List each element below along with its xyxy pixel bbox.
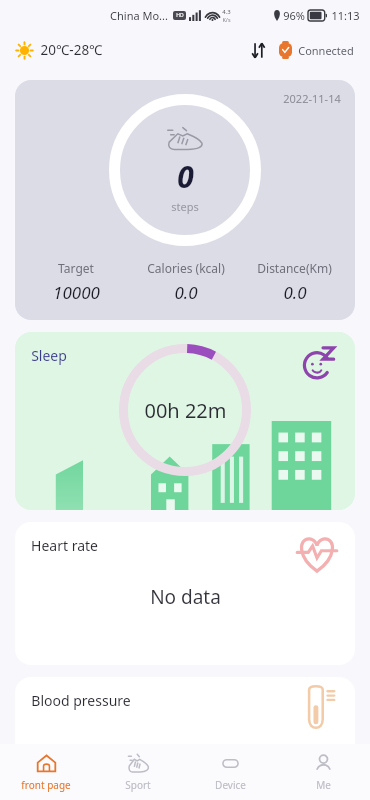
button[interactable]: Connected bbox=[279, 41, 354, 59]
button[interactable]: Sleep bbox=[15, 332, 355, 510]
staticText: 11:13 bbox=[331, 8, 360, 23]
staticText: Target bbox=[58, 260, 94, 276]
staticText: 10000 bbox=[53, 281, 100, 304]
staticText: K/s bbox=[222, 16, 231, 23]
button[interactable]: front page bbox=[0, 744, 92, 800]
staticText: 0.0 bbox=[174, 281, 198, 304]
staticText: HD bbox=[176, 12, 184, 19]
staticText: Sleep bbox=[31, 346, 67, 365]
staticText: 00h 22m bbox=[144, 397, 227, 424]
staticText: 96% bbox=[283, 8, 305, 23]
button[interactable]: Heart rate bbox=[15, 522, 355, 665]
staticText: front page bbox=[21, 778, 71, 792]
staticText: Connected bbox=[298, 43, 354, 58]
staticText: 2022-11-14 bbox=[283, 91, 341, 106]
button[interactable]: Device bbox=[184, 744, 277, 800]
staticText: 0.0 bbox=[283, 281, 307, 304]
staticText: 4.3 bbox=[222, 8, 231, 16]
staticText: Me bbox=[316, 778, 331, 792]
button[interactable]: Sport bbox=[92, 744, 184, 800]
staticText: Distance(Km) bbox=[257, 260, 332, 276]
staticText: Device bbox=[215, 778, 246, 792]
button[interactable]: 2022-11-14 bbox=[15, 80, 355, 320]
button[interactable]: Sync bbox=[247, 39, 269, 61]
staticText: 20℃-28℃ bbox=[40, 41, 103, 59]
staticText: Sport bbox=[125, 778, 151, 792]
staticText: 0 bbox=[177, 156, 194, 197]
staticText: Calories (kcal) bbox=[147, 260, 225, 276]
staticText: Blood pressure bbox=[31, 691, 131, 710]
staticText: China Mo... bbox=[110, 8, 168, 23]
staticText: steps bbox=[171, 199, 199, 214]
button[interactable]: Me bbox=[277, 744, 370, 800]
button[interactable]: Blood pressure bbox=[15, 677, 355, 797]
staticText: Heart rate bbox=[31, 536, 98, 555]
staticText: No data bbox=[150, 584, 221, 610]
